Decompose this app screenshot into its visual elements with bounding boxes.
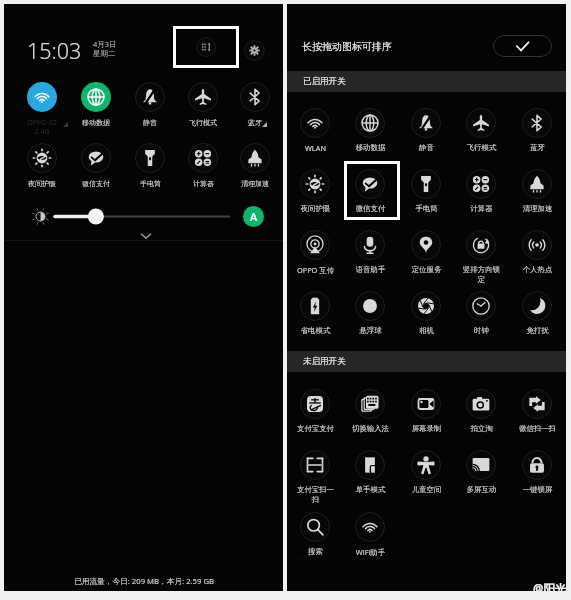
staticText: 时钟 xyxy=(462,326,501,335)
button[interactable]: 飞行模式 xyxy=(176,82,230,134)
button[interactable]: 微信支付 xyxy=(343,169,397,225)
button[interactable]: WLAN xyxy=(288,108,342,164)
button[interactable]: 飞行模式 xyxy=(454,108,508,164)
staticText: 搜索 xyxy=(296,547,335,556)
button[interactable]: 清理加速 xyxy=(510,169,564,225)
button[interactable]: 免打扰 xyxy=(510,291,564,347)
staticText: 夜间护眼 xyxy=(28,179,56,188)
staticText: 已启用开关 xyxy=(303,76,346,87)
staticText: 清理加速 xyxy=(241,179,269,188)
button[interactable]: OPPO-S2 2.4G xyxy=(15,82,69,134)
button[interactable]: 支付宝扫一扫 xyxy=(288,450,342,506)
staticText: 切换输入法 xyxy=(351,424,390,433)
button[interactable]: 一键锁屏 xyxy=(510,450,564,506)
staticText: 清理加速 xyxy=(518,204,557,213)
button[interactable]: 竖排方向锁定 xyxy=(454,230,508,286)
staticText: 移动数据 xyxy=(82,118,110,127)
button[interactable]: 切换输入法 xyxy=(343,389,397,445)
staticText: 静音 xyxy=(143,118,157,127)
button[interactable]: 定位服务 xyxy=(399,230,453,286)
button[interactable]: 微信支付 xyxy=(69,143,123,195)
button[interactable]: 静音 xyxy=(123,82,177,134)
staticText: 手电筒 xyxy=(407,204,446,213)
staticText: 计算器 xyxy=(193,179,214,188)
button[interactable]: Edit quick settings xyxy=(173,26,239,68)
staticText: 单手模式 xyxy=(351,485,390,494)
staticText: 飞行模式 xyxy=(462,143,501,152)
button[interactable]: 单手模式 xyxy=(343,450,397,506)
button[interactable]: Done xyxy=(493,35,552,57)
button[interactable]: 时钟 xyxy=(454,291,508,347)
staticText: 静音 xyxy=(407,143,446,152)
button[interactable]: 儿童空间 xyxy=(399,450,453,506)
staticText: 拍立淘 xyxy=(462,424,501,433)
button[interactable]: 支付宝支付 xyxy=(288,389,342,445)
button[interactable]: 移动数据 xyxy=(69,82,123,134)
staticText: 微信支付 xyxy=(82,179,110,188)
button[interactable]: 蓝牙 xyxy=(510,108,564,164)
button[interactable]: 计算器 xyxy=(454,169,508,225)
staticText: 微信扫一扫 xyxy=(518,424,557,433)
button[interactable]: 清理加速 xyxy=(228,143,282,195)
staticText: 已启用 WiFi 助手 xyxy=(293,555,331,562)
button[interactable]: OPPO 互传 xyxy=(288,230,342,286)
staticText: 计算器 xyxy=(462,204,501,213)
staticText: 儿童空间 xyxy=(407,485,446,494)
staticText: OPPO 互传 xyxy=(296,265,335,275)
button[interactable]: 夜间护眼 xyxy=(15,143,69,195)
button[interactable]: 搜索 xyxy=(288,512,342,568)
button[interactable]: 屏幕录制 xyxy=(399,389,453,445)
staticText: 相机 xyxy=(407,326,446,335)
button[interactable]: 手电筒 xyxy=(123,143,177,195)
staticText: 已用流量，今日: 209 MB，本月: 2.59 GB xyxy=(74,576,214,587)
staticText: OPPO-S2 2.4G xyxy=(27,118,57,136)
staticText: A xyxy=(250,209,258,224)
button[interactable]: 省电模式 xyxy=(288,291,342,347)
button[interactable]: 微信扫一扫 xyxy=(510,389,564,445)
staticText: @阳光 xyxy=(533,581,567,597)
button[interactable]: 悬浮球 xyxy=(343,291,397,347)
staticText: 个人热点 xyxy=(518,265,557,274)
staticText: 手电筒 xyxy=(140,179,161,188)
button[interactable]: 移动数据 xyxy=(343,108,397,164)
staticText: 微信支付 xyxy=(351,204,390,213)
button[interactable]: 计算器 xyxy=(176,143,230,195)
button[interactable]: 手电筒 xyxy=(399,169,453,225)
staticText: 飞行模式 xyxy=(189,118,217,127)
staticText: 长按拖动图标可排序 xyxy=(302,40,392,53)
staticText: WLAN xyxy=(296,143,335,153)
staticText: 蓝牙 xyxy=(248,118,262,127)
staticText: 移动数据 xyxy=(351,143,390,152)
button[interactable]: Settings xyxy=(244,40,265,61)
staticText: 语音助手 xyxy=(351,265,390,274)
staticText: 已启用 WiFi 助手 xyxy=(348,555,386,562)
staticText: 蓝牙 xyxy=(518,143,557,152)
staticText: 多屏互动 xyxy=(462,485,501,494)
button[interactable]: 相机 xyxy=(399,291,453,347)
staticText: 竖排方向锁定 xyxy=(462,265,501,284)
button[interactable]: WiFi助手 xyxy=(343,512,397,568)
button[interactable]: 夜间护眼 xyxy=(288,169,342,225)
button[interactable]: 蓝牙 xyxy=(228,82,282,134)
button[interactable]: 语音助手 xyxy=(343,230,397,286)
button[interactable]: 多屏互动 xyxy=(454,450,508,506)
button[interactable]: 拍立淘 xyxy=(454,389,508,445)
staticText: 悬浮球 xyxy=(351,326,390,335)
button[interactable]: 静音 xyxy=(399,108,453,164)
staticText: 夜间护眼 xyxy=(296,204,335,213)
staticText: 未启用开关 xyxy=(303,356,346,367)
staticText: 支付宝扫一扫 xyxy=(296,485,335,504)
button[interactable]: Expand panel xyxy=(137,227,155,245)
staticText: 支付宝支付 xyxy=(296,424,335,433)
staticText: 15:03 xyxy=(27,36,82,65)
staticText: 定位服务 xyxy=(407,265,446,274)
staticText: 省电模式 xyxy=(296,326,335,335)
staticText: 一键锁屏 xyxy=(518,485,557,494)
staticText: 屏幕录制 xyxy=(407,424,446,433)
staticText: 星期二 xyxy=(93,49,116,58)
staticText: WiFi助手 xyxy=(351,547,390,557)
button[interactable]: Auto brightness xyxy=(243,206,264,227)
staticText: 免打扰 xyxy=(518,326,557,335)
staticText: 4月3日 xyxy=(93,39,117,49)
button[interactable]: 个人热点 xyxy=(510,230,564,286)
